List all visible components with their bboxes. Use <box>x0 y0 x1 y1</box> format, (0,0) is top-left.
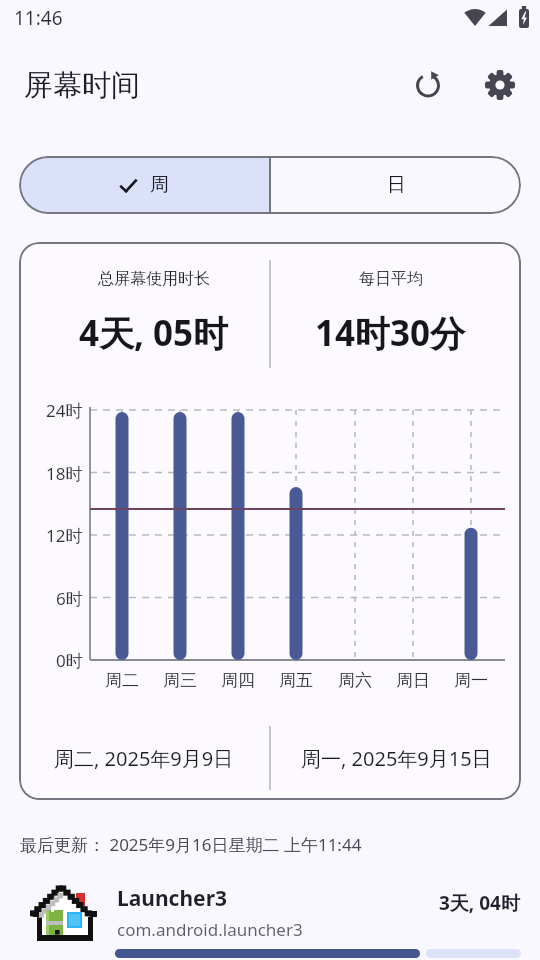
staticText: 最后更新： 2025年9月16日星期二 上午11:44 <box>20 833 362 856</box>
staticText: 11:46 <box>14 5 63 31</box>
staticText: 周五 <box>279 670 313 691</box>
staticText: 12时 <box>46 524 83 547</box>
staticText: 周 <box>150 173 169 197</box>
staticText: com.android.launcher3 <box>117 918 303 941</box>
staticText: 周三 <box>163 670 197 691</box>
staticText: 24时 <box>46 399 83 422</box>
staticText: 周一 <box>454 670 488 691</box>
staticText: 总屏幕使用时长 <box>98 269 210 289</box>
staticText: 周二 <box>105 670 139 691</box>
button[interactable]: 日 <box>271 156 521 214</box>
staticText: 周六 <box>338 670 372 691</box>
staticText: 周二, 2025年9月9日 <box>54 745 234 772</box>
staticText: 4天, 05时 <box>79 309 229 357</box>
staticText: 周一, 2025年9月15日 <box>301 745 492 772</box>
staticText: 周四 <box>221 670 255 691</box>
button[interactable] <box>404 61 452 109</box>
staticText: 18时 <box>46 462 83 485</box>
staticText: 3天, 04时 <box>439 890 520 916</box>
staticText: 屏幕时间 <box>24 67 140 104</box>
staticText: 周日 <box>396 670 430 691</box>
staticText: Launcher3 <box>117 884 228 913</box>
button[interactable]: 周 <box>19 156 269 214</box>
button[interactable] <box>476 61 524 109</box>
staticText: 6时 <box>56 587 83 610</box>
staticText: 每日平均 <box>359 269 423 289</box>
staticText: 0时 <box>56 649 83 672</box>
button[interactable]: Launcher3 <box>0 880 540 958</box>
staticText: 14时30分 <box>315 309 466 357</box>
staticText: 日 <box>387 173 406 197</box>
